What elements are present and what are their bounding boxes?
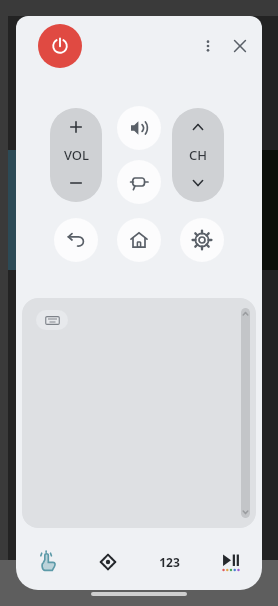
other: Keyboard [45,313,60,328]
button[interactable]: Volume [50,108,102,202]
staticText: 123 [159,554,180,570]
button[interactable]: Source [117,160,161,204]
button[interactable]: Touchpad [22,298,256,528]
staticText: VOL [64,146,89,164]
button[interactable]: Channel [172,108,224,202]
button[interactable] [50,164,102,202]
button[interactable]: Settings [180,218,224,262]
button[interactable]: Home [117,218,161,262]
button[interactable]: Touchpad mode [16,536,77,588]
other: Home [129,230,149,250]
other: Touchpad mode [36,551,58,573]
other: Mute [129,118,149,138]
button[interactable]: Power [38,24,82,68]
button[interactable] [172,164,224,202]
other: More options [199,37,217,55]
other: Power [50,36,70,56]
other: Back [66,230,86,250]
button[interactable] [172,108,224,146]
button[interactable]: More options [194,32,222,60]
button[interactable]: Back [54,218,98,262]
button[interactable] [50,108,102,146]
button[interactable]: Mute [117,106,161,150]
other: Media controls [220,551,242,573]
other: D-pad [97,551,119,573]
other: Settings [192,230,212,250]
button[interactable]: Media controls [200,536,262,588]
staticText: CH [189,146,207,164]
button[interactable]: 123 [138,536,200,588]
other: Close [232,38,248,54]
button[interactable]: Keyboard [36,310,68,330]
other: Source [129,172,149,192]
button[interactable]: Close [226,32,254,60]
button[interactable]: D-pad [77,536,138,588]
